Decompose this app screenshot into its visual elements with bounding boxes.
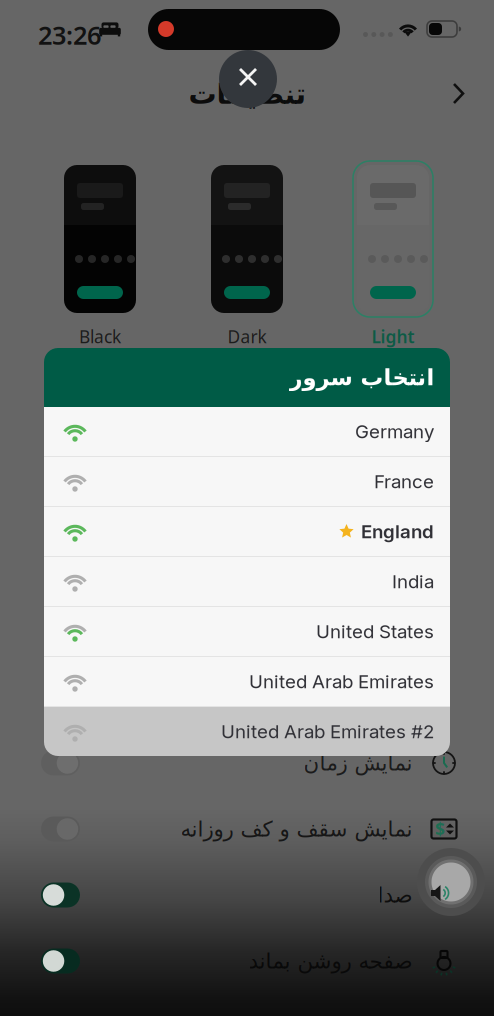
button[interactable]: Dark [207, 161, 287, 348]
button[interactable]: United States [44, 607, 450, 656]
button[interactable]: Light [353, 161, 433, 348]
staticText: نمایش زمان [303, 751, 412, 775]
button[interactable]: صدا [0, 862, 494, 928]
staticText: $ [435, 817, 445, 840]
staticText: انتخاب سرور [289, 365, 434, 390]
button[interactable]: نمایش سقف و کف روزانه [0, 796, 494, 862]
staticText: United Arab Emirates #2 [221, 720, 434, 743]
staticText: Black [79, 325, 121, 348]
staticText: Light [371, 325, 414, 348]
button[interactable]: England [44, 507, 450, 556]
button[interactable]: Germany [44, 407, 450, 456]
staticText: Germany [355, 420, 434, 443]
staticText: Dark [227, 325, 266, 348]
staticText: تنظیمات [188, 78, 306, 110]
staticText: France [374, 470, 434, 493]
staticText: India [392, 570, 434, 593]
staticText: صفحه روشن بماند [248, 949, 412, 973]
button[interactable]: United Arab Emirates #2 [44, 707, 450, 756]
staticText: 23:26 [38, 18, 101, 52]
staticText: نمایش سقف و کف روزانه [180, 817, 412, 841]
button[interactable]: Black [60, 161, 140, 348]
staticText: England [361, 520, 434, 543]
staticText: صدا [377, 883, 412, 907]
button[interactable]: نمایش زمان [0, 730, 494, 796]
button[interactable]: Back [440, 70, 478, 118]
button[interactable]: France [44, 457, 450, 506]
button[interactable]: Close [219, 50, 277, 108]
button[interactable]: United Arab Emirates [44, 657, 450, 706]
button[interactable]: صفحه روشن بماند [0, 928, 494, 994]
staticText: United Arab Emirates [249, 670, 434, 693]
staticText: United States [316, 620, 434, 643]
button[interactable]: India [44, 557, 450, 606]
